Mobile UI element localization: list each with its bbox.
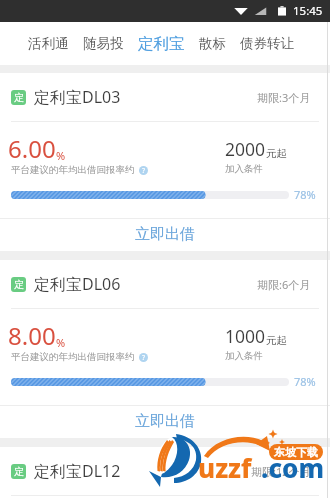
- staticText: 加入条件: [225, 163, 263, 175]
- staticText: 加入条件: [225, 350, 263, 362]
- staticText: uzzf: [198, 450, 252, 485]
- staticText: 2000: [225, 137, 266, 161]
- staticText: 随易投: [83, 35, 124, 52]
- staticText: %: [56, 335, 66, 350]
- staticText: .com: [261, 450, 325, 485]
- staticText: 元起: [266, 334, 287, 347]
- staticText: 债券转让: [240, 35, 294, 52]
- staticText: ?: [142, 353, 146, 362]
- staticText: 立即出借: [135, 225, 195, 244]
- staticText: 定利宝DL12: [34, 460, 121, 482]
- button[interactable]: 散标: [192, 27, 233, 60]
- button[interactable]: 定利宝: [131, 26, 192, 62]
- other: 帮助: [139, 166, 148, 175]
- staticText: 定利宝DL06: [34, 273, 121, 295]
- staticText: %: [56, 148, 66, 163]
- staticText: 活利通: [28, 35, 69, 52]
- staticText: 元起: [266, 147, 287, 160]
- staticText: 散标: [199, 35, 226, 52]
- staticText: 15:45: [293, 3, 323, 19]
- staticText: 立即出借: [135, 412, 195, 431]
- staticText: 期限:12个月: [251, 464, 311, 479]
- other: 帮助: [139, 353, 148, 362]
- staticText: 期限:3个月: [257, 90, 311, 105]
- staticText: 8.00: [8, 319, 56, 352]
- staticText: ?: [142, 166, 146, 175]
- button[interactable]: 立即出借: [0, 219, 330, 251]
- button[interactable]: 立即出借: [0, 406, 330, 438]
- staticText: 期限:6个月: [257, 277, 311, 292]
- staticText: 平台建议的年均出借回报率约: [11, 164, 135, 176]
- staticText: 定利宝: [138, 34, 185, 54]
- staticText: 定利宝DL03: [34, 86, 121, 108]
- button[interactable]: 随易投: [76, 27, 131, 60]
- staticText: 平台建议的年均出借回报率约: [11, 351, 135, 363]
- staticText: 定: [14, 91, 24, 104]
- staticText: 定: [14, 465, 24, 478]
- staticText: 定: [14, 278, 24, 291]
- staticText: 1000: [225, 324, 266, 348]
- staticText: 78%: [294, 374, 316, 389]
- staticText: 6.00: [8, 132, 56, 165]
- staticText: 东坡下载: [274, 445, 318, 459]
- staticText: 78%: [294, 187, 316, 202]
- button[interactable]: 活利通: [21, 27, 76, 60]
- button[interactable]: 债券转让: [233, 27, 301, 60]
